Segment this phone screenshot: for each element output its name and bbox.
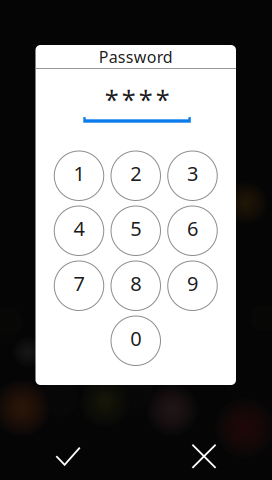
staticText: 6	[187, 215, 198, 242]
staticText: 3	[187, 160, 198, 187]
staticText: 0	[130, 325, 141, 352]
button[interactable]: 3	[168, 151, 217, 200]
staticText: 9	[187, 270, 198, 297]
staticText: 5	[130, 215, 141, 242]
button[interactable]: 8	[111, 261, 160, 310]
staticText: 2	[130, 160, 141, 187]
staticText: ****	[105, 82, 170, 116]
button[interactable]: 6	[168, 206, 217, 255]
button[interactable]: 2	[111, 151, 160, 200]
button[interactable]: 7	[54, 261, 104, 310]
button[interactable]: 1	[54, 151, 104, 200]
button[interactable]: 9	[168, 261, 217, 310]
button[interactable]: Cancel	[184, 435, 224, 477]
staticText: 4	[73, 215, 84, 242]
staticText: 8	[130, 270, 141, 297]
staticText: 1	[73, 160, 84, 187]
staticText: Password	[99, 46, 173, 67]
button[interactable]: 4	[54, 206, 104, 255]
button[interactable]: 0	[111, 316, 160, 365]
staticText: 7	[73, 270, 84, 297]
button[interactable]: 5	[111, 206, 160, 255]
button[interactable]: Confirm	[48, 435, 88, 477]
